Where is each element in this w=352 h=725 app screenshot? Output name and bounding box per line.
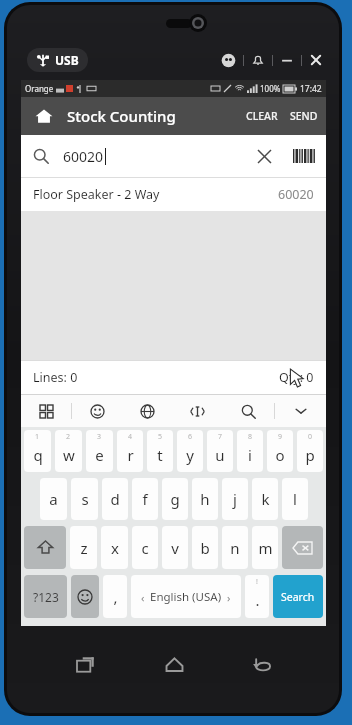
button[interactable]: SEND: [284, 101, 326, 131]
button[interactable]: Home: [21, 97, 67, 135]
button[interactable]: m: [252, 526, 278, 569]
button[interactable]: k: [252, 478, 278, 520]
staticText: 100%: [260, 83, 281, 94]
staticText: ‹: [141, 590, 145, 605]
button[interactable]: Minimize: [280, 53, 294, 67]
button[interactable]: 4: [117, 430, 143, 472]
button[interactable]: v: [162, 526, 188, 569]
staticText: j: [233, 489, 237, 509]
button[interactable]: !: [245, 575, 269, 618]
staticText: n: [230, 538, 240, 558]
staticText: ,: [113, 587, 118, 607]
staticText: 1: [35, 432, 40, 442]
button[interactable]: Clear: [252, 144, 276, 168]
button[interactable]: ,: [103, 575, 127, 618]
button[interactable]: 1: [24, 430, 51, 472]
button[interactable]: CLEAR: [240, 101, 284, 131]
button[interactable]: j: [222, 478, 248, 520]
staticText: ?123: [33, 589, 59, 605]
button[interactable]: Notifications: [251, 53, 265, 67]
staticText: g: [170, 489, 180, 509]
staticText: English (USA): [150, 589, 222, 605]
staticText: 4: [128, 432, 133, 442]
staticText: Lines: 0: [33, 369, 78, 386]
staticText: d: [110, 489, 120, 509]
staticText: s: [81, 489, 89, 509]
button[interactable]: a: [40, 478, 67, 520]
staticText: SEND: [290, 109, 318, 123]
button[interactable]: Search: [273, 575, 323, 618]
button[interactable]: Scan barcode: [290, 144, 314, 168]
button[interactable]: g: [162, 478, 188, 520]
button[interactable]: Feedback: [221, 53, 236, 68]
button[interactable]: Recents: [64, 642, 108, 686]
staticText: a: [49, 489, 58, 509]
button[interactable]: x: [101, 526, 128, 569]
staticText: q: [33, 445, 43, 465]
staticText: k: [261, 489, 270, 509]
staticText: USB: [55, 52, 79, 68]
staticText: 9: [278, 432, 283, 442]
button[interactable]: 8: [237, 430, 263, 472]
staticText: Orange: [25, 83, 54, 94]
button[interactable]: s: [71, 478, 98, 520]
staticText: 60020: [278, 186, 314, 203]
staticText: Search: [281, 590, 315, 604]
staticText: v: [171, 538, 179, 558]
staticText: .: [255, 590, 260, 610]
button[interactable]: z: [70, 526, 97, 569]
button[interactable]: Home: [152, 642, 196, 686]
button[interactable]: [24, 526, 66, 569]
staticText: 60020: [63, 147, 104, 166]
button[interactable]: Back: [239, 642, 283, 686]
button[interactable]: 9: [267, 430, 293, 472]
button[interactable]: 6: [177, 430, 203, 472]
button[interactable]: n: [222, 526, 248, 569]
staticText: Qty: 0: [279, 369, 314, 386]
button[interactable]: 7: [207, 430, 233, 472]
button[interactable]: l: [282, 478, 308, 520]
button[interactable]: c: [132, 526, 158, 569]
staticText: b: [200, 538, 210, 558]
button[interactable]: ?123: [24, 575, 67, 618]
button[interactable]: Clipboard: [21, 395, 71, 427]
staticText: 2: [66, 432, 71, 442]
button[interactable]: 0: [297, 430, 323, 472]
button[interactable]: ‹: [131, 575, 241, 618]
staticText: i: [248, 445, 252, 465]
button[interactable]: 5: [147, 430, 173, 472]
button[interactable]: 2: [55, 430, 82, 472]
staticText: 0: [308, 432, 313, 442]
staticText: 5: [158, 432, 163, 442]
staticText: o: [275, 445, 285, 465]
button[interactable]: [282, 526, 323, 569]
staticText: t: [157, 445, 163, 465]
button[interactable]: f: [132, 478, 158, 520]
button[interactable]: 3: [86, 430, 113, 472]
button[interactable]: Emoji: [72, 395, 122, 427]
button[interactable]: Floor Speaker - 2 Way: [21, 178, 326, 211]
staticText: h: [200, 489, 210, 509]
staticText: ›: [227, 590, 231, 605]
staticText: CLEAR: [246, 109, 278, 123]
staticText: l: [293, 489, 297, 509]
button[interactable]: Search: [223, 395, 274, 427]
staticText: x: [111, 538, 119, 558]
button[interactable]: b: [192, 526, 218, 569]
button[interactable]: Close: [309, 53, 323, 67]
staticText: f: [142, 489, 148, 509]
staticText: 8: [248, 432, 253, 442]
button[interactable]: Hide keyboard: [275, 395, 326, 427]
staticText: Stock Counting: [67, 106, 176, 126]
staticText: 6: [188, 432, 193, 442]
button[interactable]: Language: [122, 395, 172, 427]
staticText: !: [256, 577, 258, 587]
staticText: 7: [218, 432, 223, 442]
button[interactable]: d: [102, 478, 128, 520]
button[interactable]: h: [192, 478, 218, 520]
button[interactable]: 60020: [21, 135, 326, 177]
button[interactable]: Cursor control: [172, 395, 223, 427]
button[interactable]: USB: [36, 52, 79, 68]
button[interactable]: [71, 575, 99, 618]
staticText: p: [305, 445, 315, 465]
